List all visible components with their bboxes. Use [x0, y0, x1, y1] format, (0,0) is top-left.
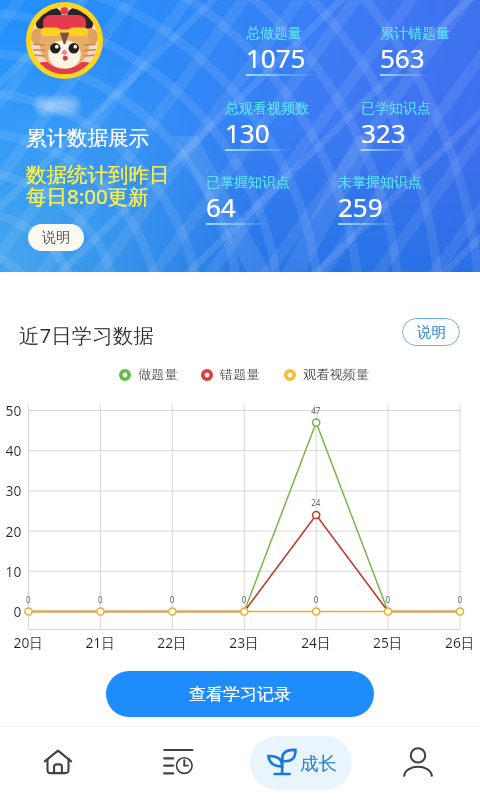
button[interactable]: Avatar	[26, 2, 103, 79]
button[interactable]: 成长	[250, 736, 352, 790]
button[interactable]: Home	[0, 726, 120, 800]
staticText: 做题量	[138, 366, 178, 383]
staticText: 近7日学习数据	[19, 321, 154, 349]
staticText: 已学知识点	[361, 100, 431, 118]
button[interactable]: Learning records	[120, 726, 240, 800]
staticText: 259	[338, 189, 383, 224]
staticText: 1075	[246, 40, 306, 75]
staticText: 563	[380, 40, 425, 75]
button[interactable]: Profile	[360, 726, 480, 800]
staticText: 错题量	[220, 366, 260, 383]
staticText: 64	[206, 189, 236, 224]
staticText: 323	[361, 115, 406, 150]
staticText: 说明	[417, 323, 446, 341]
staticText: 说明	[42, 229, 70, 247]
staticText: 累计数据展示	[26, 125, 149, 151]
staticText: 成长	[300, 752, 337, 775]
staticText: 查看学习记录	[189, 684, 291, 705]
staticText: 数据统计到昨日	[26, 162, 170, 188]
button[interactable]: 说明	[402, 318, 460, 346]
staticText: 未掌握知识点	[338, 174, 422, 192]
staticText: 观看视频量	[303, 366, 369, 383]
staticText: 每日8:00更新	[26, 182, 149, 210]
button[interactable]: 查看学习记录	[106, 671, 374, 717]
staticText: 总观看视频数	[225, 100, 309, 118]
button[interactable]: 说明	[28, 224, 84, 251]
staticText: 累计错题量	[380, 25, 450, 43]
staticText: 130	[225, 115, 270, 150]
staticText: 已掌握知识点	[206, 174, 290, 192]
staticText: 总做题量	[246, 25, 302, 43]
